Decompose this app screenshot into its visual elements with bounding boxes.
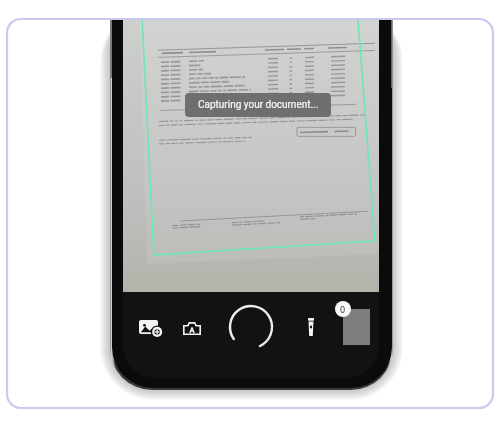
button[interactable]: Scanned pages bbox=[334, 300, 379, 347]
button[interactable]: Capture document bbox=[225, 301, 277, 353]
button[interactable]: Auto capture bbox=[175, 313, 209, 343]
staticText: 0 bbox=[340, 303, 346, 315]
button[interactable]: Flashlight bbox=[297, 313, 325, 341]
staticText: Capturing your document... bbox=[198, 99, 319, 111]
button[interactable]: Import image bbox=[131, 312, 165, 342]
